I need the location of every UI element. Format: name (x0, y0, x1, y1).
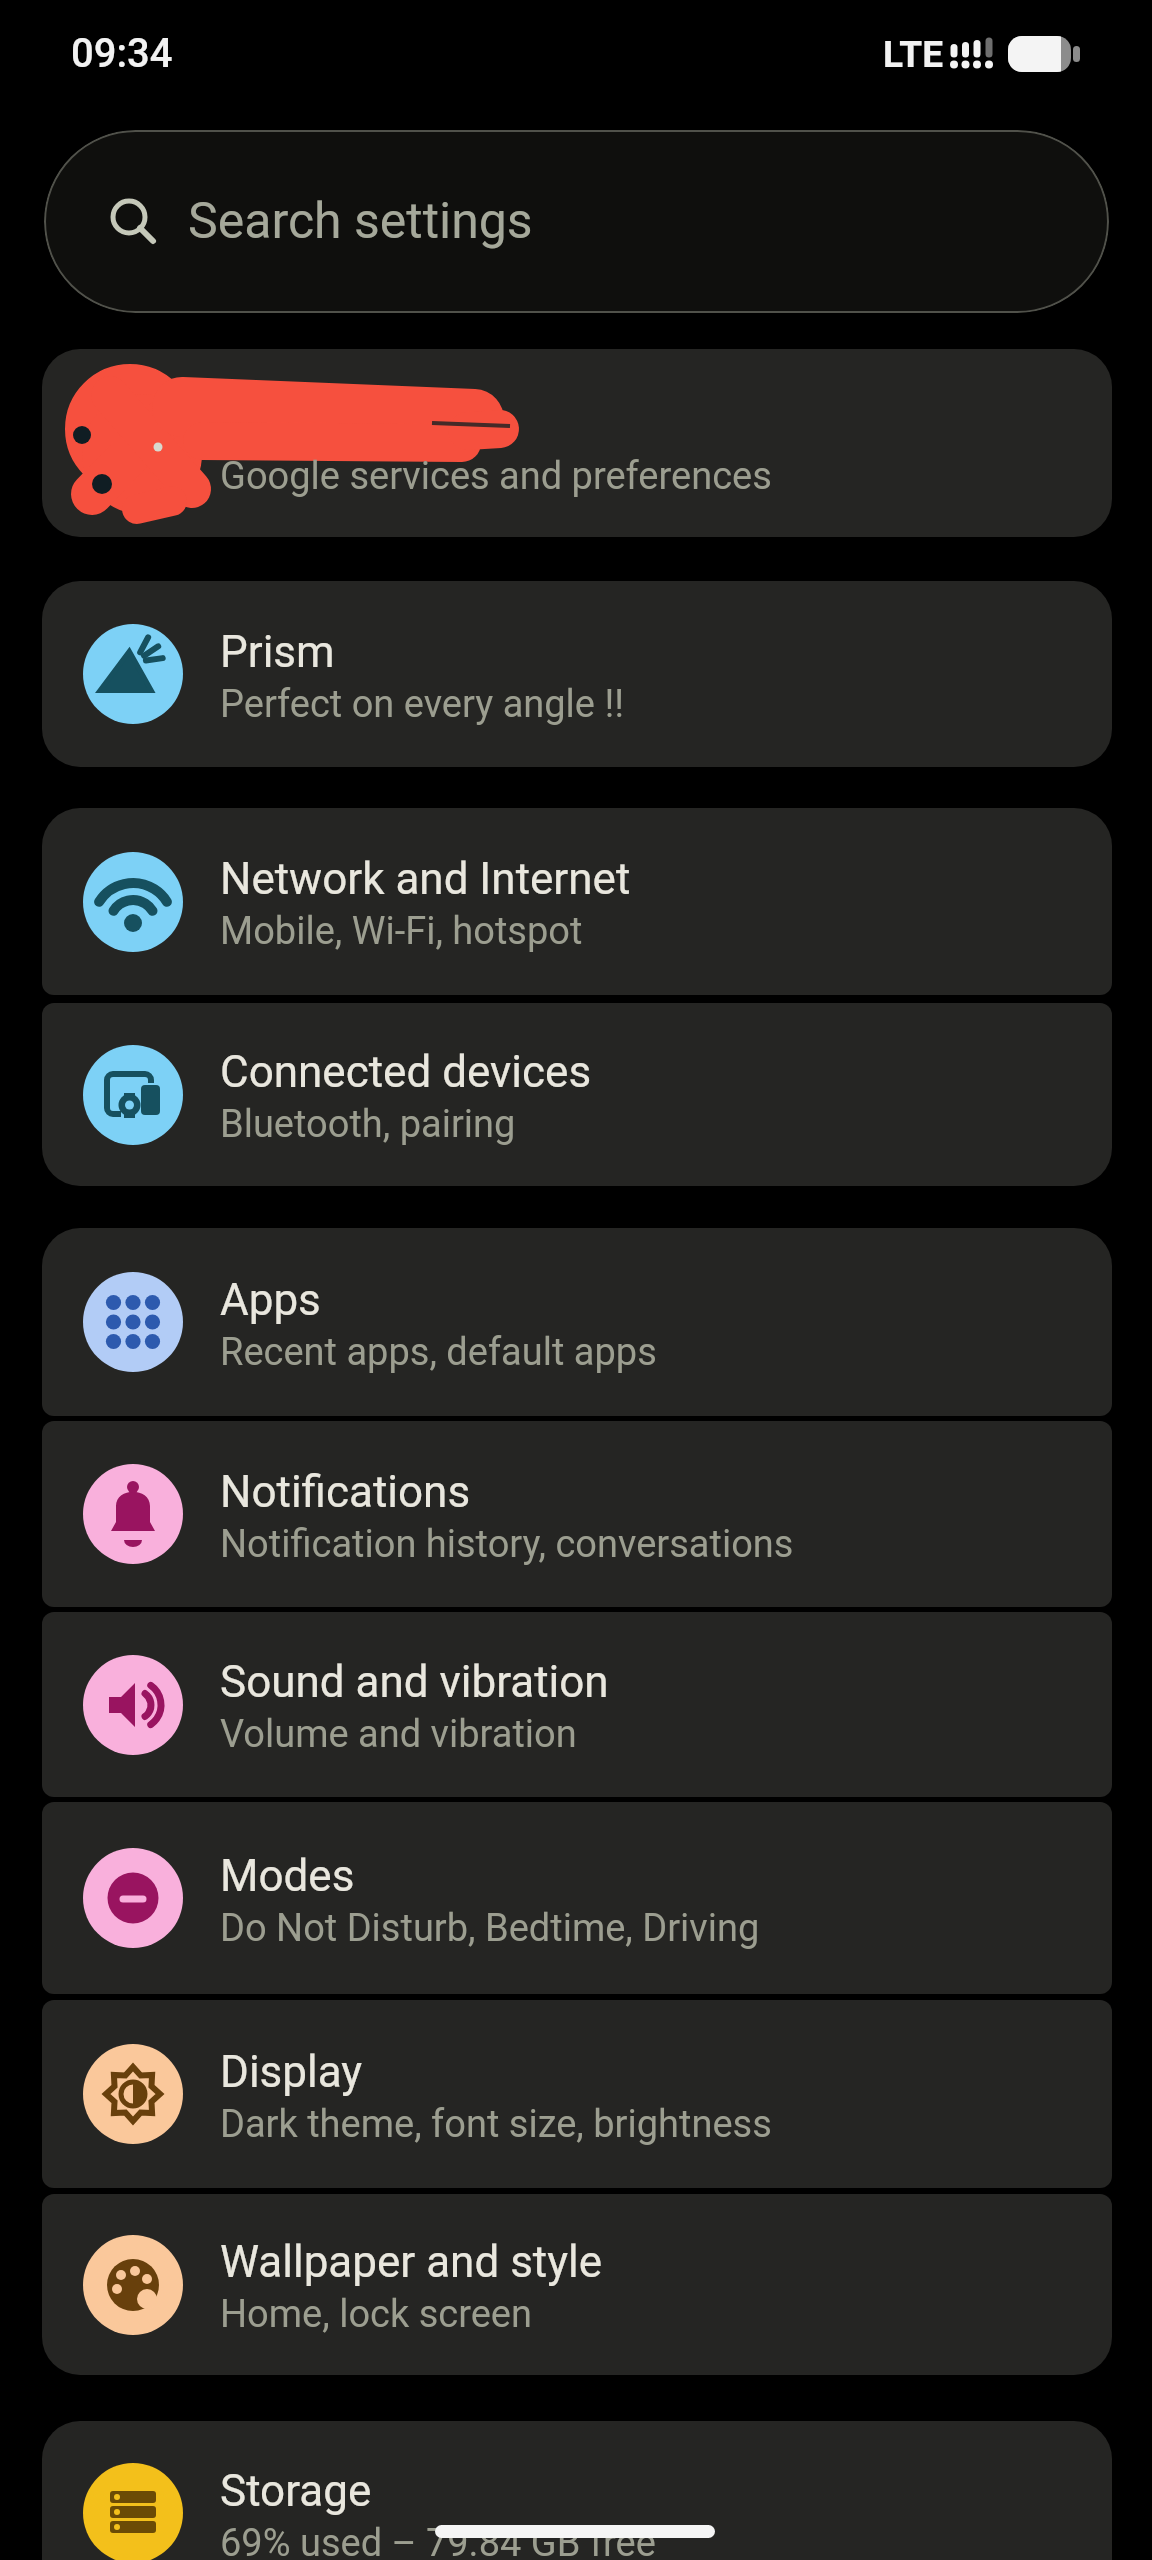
staticText: Connected devices (220, 1046, 592, 1098)
button[interactable]: Sound and vibration (42, 1612, 1112, 1797)
staticText: Volume and vibration (220, 1712, 577, 1757)
staticText: Storage (220, 2465, 372, 2517)
button[interactable]: Network and Internet (42, 808, 1112, 995)
staticText: Home, lock screen (220, 2292, 532, 2337)
staticText: Do Not Disturb, Bedtime, Driving (220, 1906, 760, 1951)
button[interactable]: Google services and preferences (42, 349, 1112, 537)
button[interactable]: Display (42, 2000, 1112, 2188)
staticText: Search settings (188, 192, 533, 251)
staticText: Bluetooth, pairing (220, 1102, 516, 1147)
staticText: LTE (883, 33, 944, 76)
staticText: Notification history, conversations (220, 1522, 794, 1567)
staticText: Apps (220, 1274, 321, 1326)
staticText: Sound and vibration (220, 1656, 609, 1708)
staticText: Perfect on every angle !! (220, 682, 625, 727)
staticText: Modes (220, 1850, 355, 1902)
staticText: Display (220, 2046, 363, 2098)
staticText: Notifications (220, 1466, 471, 1518)
button[interactable]: Wallpaper and style (42, 2194, 1112, 2375)
staticText: Dark theme, font size, brightness (220, 2102, 772, 2147)
staticText: Prism (220, 626, 335, 678)
staticText: Network and Internet (220, 853, 631, 905)
button[interactable]: Prism (42, 581, 1112, 767)
button[interactable]: Connected devices (42, 1003, 1112, 1186)
button[interactable]: Modes (42, 1802, 1112, 1994)
staticText: 69% used – 79.84 GB free (220, 2521, 656, 2560)
button[interactable]: Apps (42, 1228, 1112, 1416)
staticText: Mobile, Wi-Fi, hotspot (220, 909, 583, 954)
staticText: 09:34 (71, 30, 173, 77)
staticText: Recent apps, default apps (220, 1330, 657, 1375)
button[interactable]: Notifications (42, 1421, 1112, 1607)
button[interactable]: Search settings (44, 130, 1109, 313)
staticText: Google services and preferences (220, 454, 772, 499)
button[interactable]: Storage (42, 2421, 1112, 2560)
staticText: Wallpaper and style (220, 2236, 603, 2288)
